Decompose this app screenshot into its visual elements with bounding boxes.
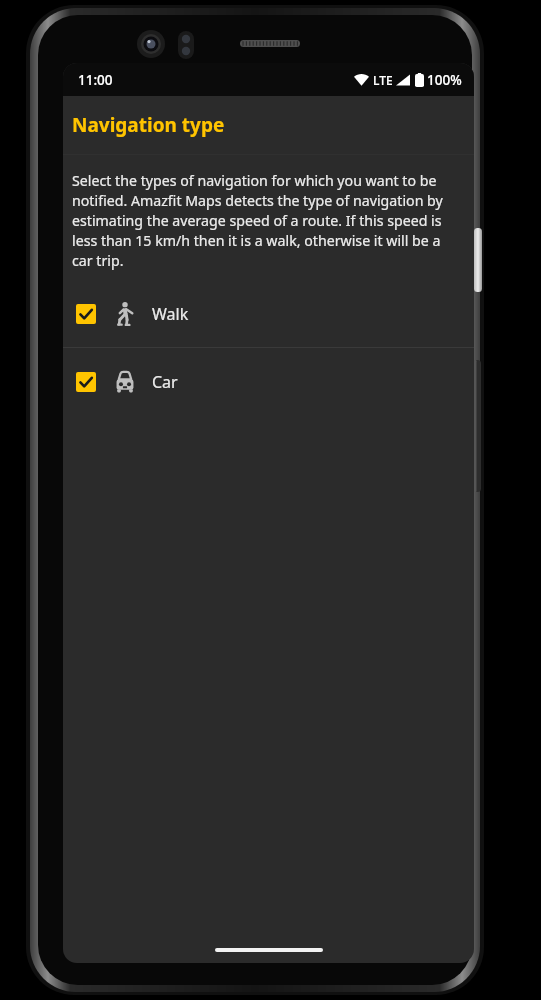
other: Checked (76, 372, 96, 392)
staticText: 100% (427, 71, 462, 89)
button[interactable]: Checked (63, 348, 474, 415)
other: Car (112, 369, 138, 395)
button[interactable]: Checked (63, 280, 474, 347)
staticText: Car (152, 371, 178, 393)
other: Walk (112, 301, 138, 327)
staticText: 11:00 (78, 71, 113, 89)
staticText: Walk (152, 303, 189, 325)
staticText: LTE (373, 72, 393, 88)
staticText: Navigation type (72, 112, 225, 138)
staticText: Select the types of navigation for which… (72, 171, 462, 270)
other: Checked (76, 304, 96, 324)
